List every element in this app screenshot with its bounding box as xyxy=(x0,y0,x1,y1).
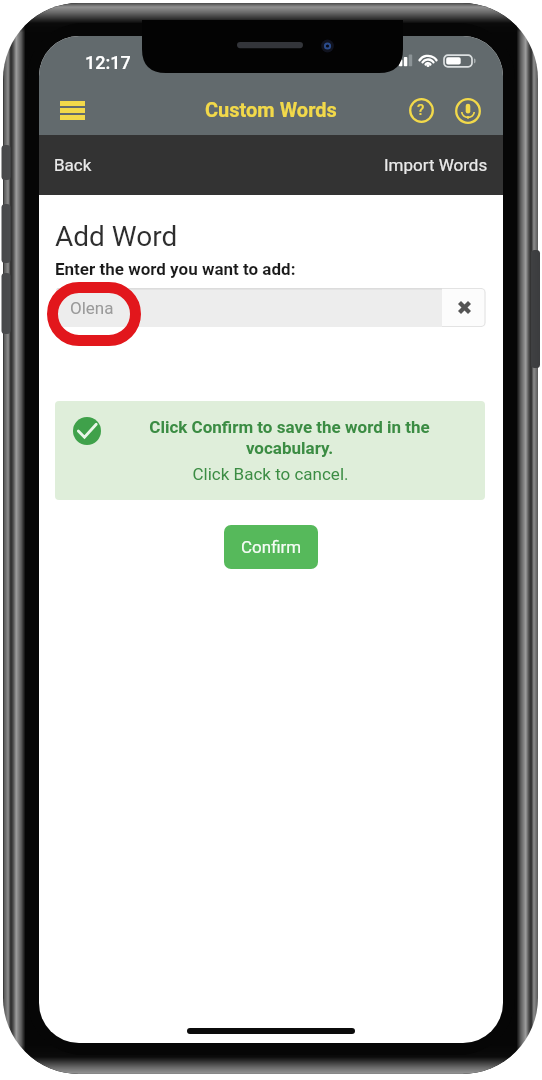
button[interactable]: Olena xyxy=(56,288,442,327)
button[interactable]: Open navigation menu xyxy=(47,88,98,133)
staticText: Confirm xyxy=(241,537,302,557)
staticText: Olena xyxy=(70,298,114,318)
staticText: Click Back to cancel. xyxy=(192,464,349,484)
staticText: ? xyxy=(417,101,425,119)
button[interactable]: Help xyxy=(399,88,443,133)
staticText: Click Confirm to save the word in the vo… xyxy=(149,417,430,458)
button[interactable]: Confirm xyxy=(224,525,318,569)
staticText: Back xyxy=(54,155,92,175)
button[interactable]: Voice input xyxy=(446,88,490,133)
staticText: 12:17 xyxy=(85,52,131,73)
staticText: Custom Words xyxy=(205,98,337,121)
button[interactable]: Import Words xyxy=(378,135,494,195)
staticText: Import Words xyxy=(384,155,488,175)
staticText: Enter the word you want to add: xyxy=(55,259,296,279)
staticText: Add Word xyxy=(55,220,178,253)
button[interactable]: Clear text xyxy=(442,288,486,327)
button[interactable]: Back xyxy=(45,135,101,195)
